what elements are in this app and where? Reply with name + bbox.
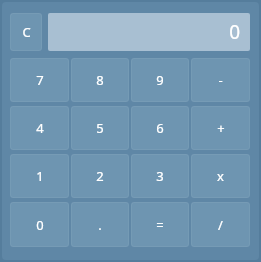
staticText: / [218, 216, 223, 234]
button[interactable]: x [191, 154, 250, 198]
staticText: 2 [96, 167, 104, 185]
button[interactable]: 1 [10, 154, 69, 198]
button[interactable]: 9 [131, 58, 189, 102]
button[interactable]: . [71, 202, 129, 247]
button[interactable]: 0 [10, 202, 69, 247]
button[interactable]: 7 [10, 58, 69, 102]
button[interactable]: 0 [48, 13, 250, 51]
staticText: . [98, 216, 102, 234]
button[interactable]: 5 [71, 106, 129, 150]
button[interactable]: = [131, 202, 189, 247]
button[interactable]: 6 [131, 106, 189, 150]
staticText: 3 [156, 167, 164, 185]
button[interactable]: - [191, 58, 250, 102]
staticText: 6 [156, 119, 164, 137]
staticText: 5 [96, 119, 104, 137]
button[interactable]: 2 [71, 154, 129, 198]
staticText: 0 [36, 216, 44, 234]
button[interactable]: 4 [10, 106, 69, 150]
staticText: 4 [36, 119, 44, 137]
button[interactable]: C [10, 13, 42, 51]
staticText: = [156, 216, 164, 234]
staticText: C [22, 23, 31, 41]
button[interactable]: 8 [71, 58, 129, 102]
staticText: + [217, 119, 225, 137]
button[interactable]: + [191, 106, 250, 150]
staticText: 7 [36, 71, 44, 89]
staticText: x [217, 167, 224, 185]
staticText: 9 [156, 71, 164, 89]
button[interactable]: / [191, 202, 250, 247]
staticText: 0 [229, 19, 240, 45]
staticText: 1 [36, 167, 44, 185]
staticText: - [218, 71, 223, 89]
button[interactable]: 3 [131, 154, 189, 198]
staticText: 8 [96, 71, 104, 89]
